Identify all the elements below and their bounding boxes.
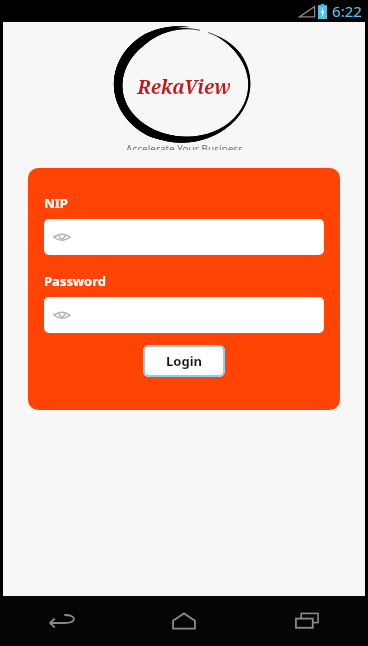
button[interactable]: Password input <box>44 297 324 333</box>
staticText: Accelerate Your Business <box>126 142 243 150</box>
staticText: NIP <box>44 194 68 212</box>
button[interactable]: Login <box>143 345 225 377</box>
button[interactable]: Home <box>139 596 229 646</box>
button[interactable]: Recent apps <box>262 596 352 646</box>
button[interactable]: Back <box>16 596 106 646</box>
staticText: Password <box>44 272 106 290</box>
staticText: 6:22 <box>332 1 362 21</box>
staticText: RekaView <box>137 74 231 100</box>
staticText: Login <box>166 352 202 370</box>
button[interactable]: NIP input <box>44 219 324 255</box>
